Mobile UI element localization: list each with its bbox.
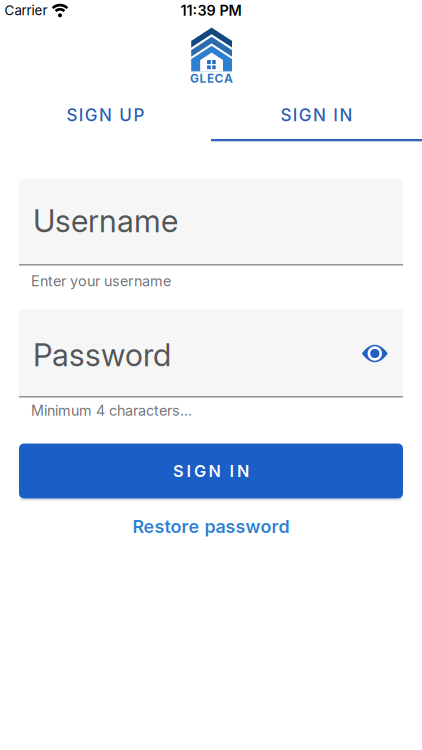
button[interactable] bbox=[19, 309, 403, 397]
staticText: S bbox=[173, 461, 184, 481]
staticText: I bbox=[186, 461, 191, 481]
staticText: N bbox=[237, 461, 249, 481]
button[interactable]: S bbox=[0, 93, 211, 137]
staticText: 11:39 PM bbox=[180, 2, 241, 19]
staticText: Minimum 4 characters... bbox=[31, 402, 192, 419]
staticText: I bbox=[79, 105, 84, 125]
staticText: Password bbox=[33, 336, 171, 374]
button[interactable] bbox=[19, 179, 403, 265]
staticText: G bbox=[85, 105, 98, 125]
staticText: U bbox=[119, 105, 132, 125]
staticText: I bbox=[333, 105, 338, 125]
staticText: N bbox=[313, 105, 326, 125]
staticText: N bbox=[99, 105, 112, 125]
staticText: S bbox=[66, 105, 77, 125]
staticText: I bbox=[293, 105, 298, 125]
staticText: I bbox=[229, 461, 234, 481]
staticText: E bbox=[207, 71, 214, 86]
staticText: G bbox=[190, 71, 199, 86]
staticText: Restore password bbox=[132, 516, 289, 537]
staticText: P bbox=[133, 105, 144, 125]
staticText: Carrier bbox=[4, 2, 47, 18]
button[interactable]: S bbox=[19, 443, 403, 498]
staticText: C bbox=[215, 71, 224, 86]
staticText: S bbox=[281, 105, 292, 125]
button[interactable]: Restore password bbox=[101, 511, 321, 541]
staticText: N bbox=[339, 105, 352, 125]
button[interactable]: S bbox=[211, 93, 422, 137]
staticText: L bbox=[200, 71, 207, 86]
staticText: G bbox=[299, 105, 312, 125]
staticText: N bbox=[208, 461, 220, 481]
button[interactable] bbox=[351, 329, 399, 377]
staticText: Enter your username bbox=[31, 272, 171, 290]
staticText: Username bbox=[33, 202, 178, 240]
staticText: A bbox=[224, 71, 233, 86]
staticText: G bbox=[194, 461, 206, 481]
